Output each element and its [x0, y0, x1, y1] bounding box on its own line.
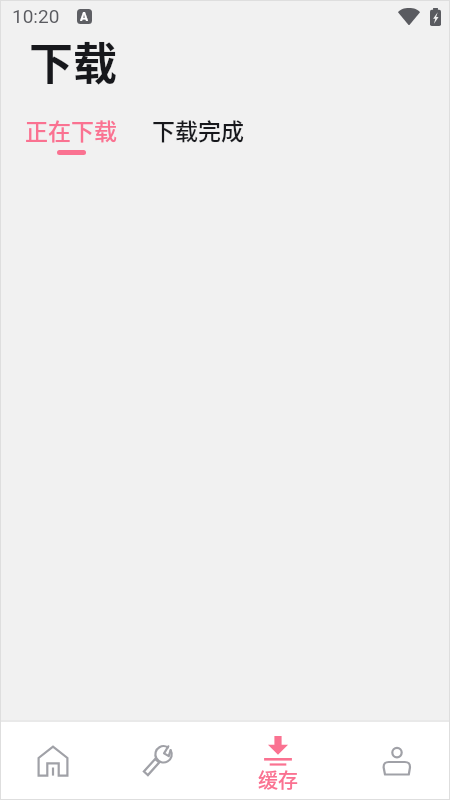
button[interactable]: Profile	[337, 722, 450, 800]
staticText: 10:20	[12, 5, 60, 27]
button[interactable]: 正在下载	[13, 105, 129, 163]
button[interactable]: 下载完成	[140, 105, 256, 154]
staticText: 下载	[29, 29, 117, 93]
staticText: 缓存	[258, 765, 298, 794]
button[interactable]: Tools	[112, 722, 224, 800]
staticText: 下载完成	[152, 113, 244, 146]
button[interactable]: Home	[0, 722, 112, 800]
button[interactable]: 缓存	[224, 722, 337, 800]
staticText: 正在下载	[25, 113, 117, 146]
staticText: A	[80, 10, 89, 24]
